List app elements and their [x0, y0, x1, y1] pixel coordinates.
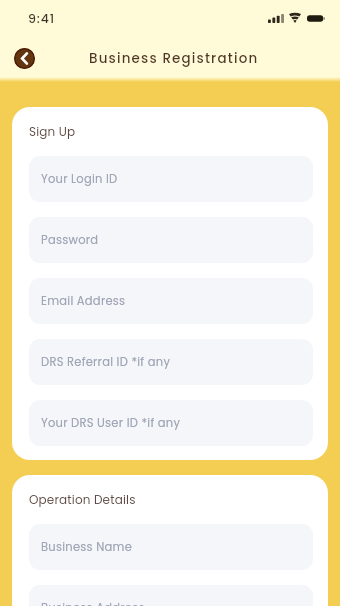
staticText: Business Address — [41, 600, 145, 606]
button[interactable]: Password — [29, 217, 313, 263]
button[interactable]: Your DRS User ID *if any — [29, 400, 313, 446]
button[interactable]: Business Name — [29, 524, 313, 570]
button[interactable]: DRS Referral ID *if any — [29, 339, 313, 385]
button[interactable]: Back — [14, 48, 35, 69]
staticText: DRS Referral ID *if any — [41, 354, 171, 370]
staticText: Your Login ID — [41, 171, 118, 187]
button[interactable]: Your Login ID — [29, 156, 313, 202]
staticText: Email Address — [41, 293, 126, 309]
staticText: Operation Details — [29, 491, 136, 508]
staticText: Business Name — [41, 539, 133, 555]
button[interactable]: Business Address — [29, 585, 313, 606]
staticText: Business Registration — [89, 49, 259, 68]
staticText: 9:41 — [28, 10, 56, 27]
staticText: Password — [41, 232, 99, 248]
staticText: Your DRS User ID *if any — [41, 415, 181, 431]
button[interactable]: Email Address — [29, 278, 313, 324]
staticText: Sign Up — [29, 123, 76, 140]
